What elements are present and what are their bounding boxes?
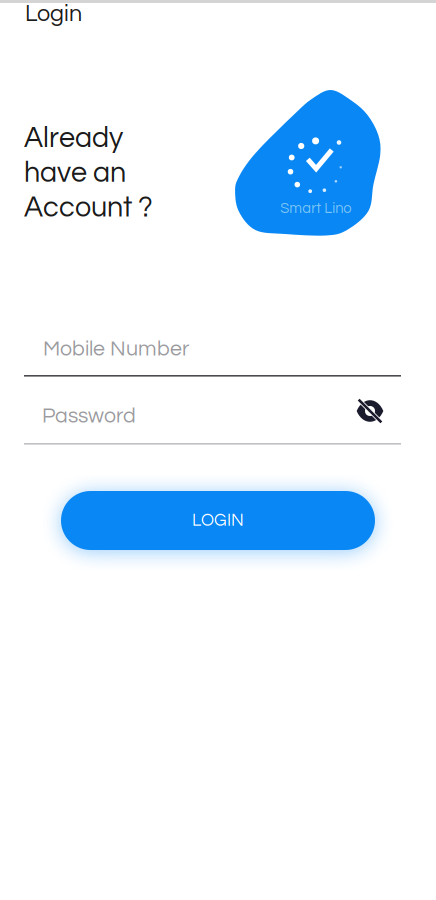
- staticText: Login: [25, 2, 82, 26]
- button[interactable]: Password: [24, 402, 401, 446]
- staticText: LOGIN: [192, 512, 244, 529]
- staticText: have an: [24, 158, 126, 188]
- staticText: Password: [42, 405, 136, 427]
- staticText: Already: [24, 123, 123, 153]
- button[interactable]: Login: [25, 1, 145, 27]
- staticText: Account ?: [24, 193, 153, 222]
- button[interactable]: Show password: [348, 393, 392, 429]
- staticText: Smart Lino: [280, 201, 351, 216]
- button[interactable]: LOGIN: [61, 491, 375, 550]
- staticText: Mobile Number: [43, 338, 189, 360]
- button[interactable]: Mobile Number: [24, 335, 401, 379]
